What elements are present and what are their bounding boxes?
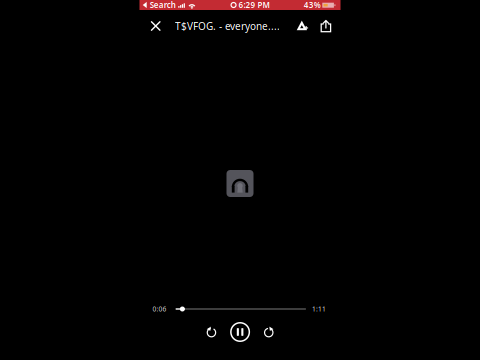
staticText: T$VFOG. - everyone.... [175,19,280,33]
staticText: Search [150,0,176,10]
staticText: 1:11 [312,305,326,313]
button[interactable]: Pause [227,319,253,345]
staticText: 43% [304,0,321,10]
staticText: 6:29 PM [238,0,269,10]
staticText: 0:06 [153,305,167,313]
button[interactable]: Share [314,12,337,40]
button[interactable]: Close [142,11,173,41]
button[interactable]: Rewind 15 seconds [201,321,222,343]
button[interactable]: Add to Drive [290,12,314,40]
button[interactable]: Forward 15 seconds [258,321,279,343]
